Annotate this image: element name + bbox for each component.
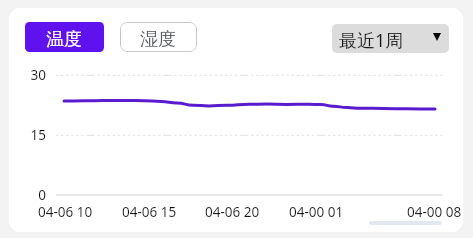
button[interactable]: 温度	[25, 22, 104, 52]
staticText: 04-00 01	[289, 203, 344, 221]
staticText: 04-00 08	[407, 203, 462, 221]
staticText: 最近1周	[339, 28, 404, 53]
staticText: 04-06 15	[122, 203, 177, 221]
button[interactable]: Open range selector	[332, 24, 449, 53]
button[interactable]: 湿度	[120, 22, 197, 52]
staticText: 30	[23, 66, 46, 84]
staticText: 湿度	[140, 28, 176, 51]
staticText: 温度	[46, 28, 82, 51]
staticText: 04-06 20	[205, 203, 260, 221]
staticText: 0	[23, 186, 46, 204]
staticText: 15	[23, 126, 46, 144]
staticText: 04-06 10	[38, 203, 93, 221]
